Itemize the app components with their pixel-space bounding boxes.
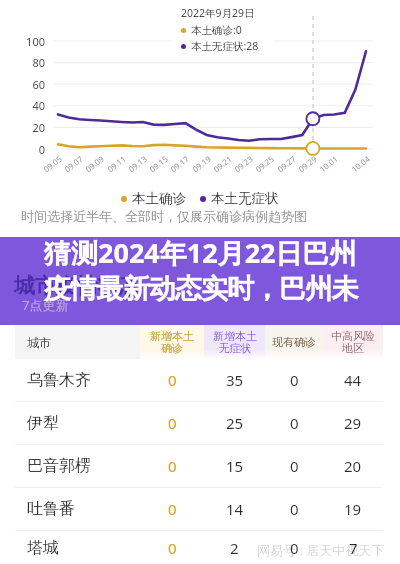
staticText: 44 xyxy=(344,370,362,390)
staticText: 猜测2024年12月22日巴州 xyxy=(44,234,357,271)
staticText: 0 xyxy=(290,456,299,476)
staticText: 0 xyxy=(290,413,299,433)
staticText: 09.27 xyxy=(275,153,298,174)
staticText: 网易号 : 居天中视天下 xyxy=(257,541,385,559)
staticText: 100 xyxy=(15,34,45,49)
staticText: 09.29 xyxy=(296,153,319,174)
staticText: 0 xyxy=(15,142,45,157)
staticText: 40 xyxy=(15,98,45,113)
staticText: 城市疫情状态 xyxy=(14,273,140,299)
staticText: 09.15 xyxy=(147,153,170,174)
staticText: 20 xyxy=(15,120,45,135)
staticText: 09.21 xyxy=(211,153,234,174)
staticText: 09.07 xyxy=(62,153,85,174)
staticText: 2022年9月29日 xyxy=(181,6,255,20)
staticText: 吐鲁番 xyxy=(27,499,75,519)
staticText: 15 xyxy=(226,456,244,476)
staticText: 本土确诊:0 xyxy=(191,23,242,37)
staticText: 80 xyxy=(15,55,45,70)
staticText: 29 xyxy=(344,413,362,433)
staticText: 2 xyxy=(230,538,239,558)
staticText: 0 xyxy=(290,370,299,390)
staticText: 0 xyxy=(168,499,177,519)
staticText: 伊犁 xyxy=(27,413,59,433)
staticText: 0 xyxy=(290,499,299,519)
staticText: 巴音郭楞 xyxy=(27,456,91,476)
staticText: 0 xyxy=(290,538,299,558)
staticText: 20 xyxy=(344,456,362,476)
staticText: 0 xyxy=(168,456,177,476)
staticText: 09.05 xyxy=(41,153,64,174)
staticText: 乌鲁木齐 xyxy=(27,370,91,390)
staticText: 时间选择近半年、全部时，仅展示确诊病例趋势图 xyxy=(0,208,364,224)
staticText: 塔城 xyxy=(27,538,59,558)
staticText: 疫情最新动态实时，巴州未 xyxy=(44,272,358,306)
staticText: 09.13 xyxy=(126,153,149,174)
staticText: 7 xyxy=(349,538,358,558)
staticText: 09.09 xyxy=(83,153,106,174)
staticText: 本土确诊 xyxy=(132,190,186,207)
staticText: 10.01 xyxy=(317,153,340,174)
staticText: 新增本土 确诊 xyxy=(150,329,194,356)
staticText: 09.19 xyxy=(190,153,213,174)
staticText: 60 xyxy=(15,77,45,92)
staticText: 7点更新 xyxy=(22,296,69,314)
staticText: 现有确诊 xyxy=(272,335,316,349)
staticText: 19 xyxy=(344,499,362,519)
staticText: 新增本土 无症状 xyxy=(213,329,257,356)
staticText: 25 xyxy=(226,413,244,433)
staticText: 14 xyxy=(226,499,244,519)
staticText: 09.23 xyxy=(232,153,255,174)
staticText: 0 xyxy=(168,538,177,558)
staticText: 本土无症状:28 xyxy=(191,39,259,53)
staticText: 0 xyxy=(168,413,177,433)
staticText: 本土无症状 xyxy=(211,190,279,207)
staticText: 09.11 xyxy=(105,153,128,174)
staticText: 中高风险 地区 xyxy=(331,329,375,356)
staticText: 10.04 xyxy=(349,153,372,174)
staticText: 09.25 xyxy=(253,153,276,174)
staticText: 35 xyxy=(226,370,244,390)
staticText: 0 xyxy=(168,370,177,390)
staticText: 城市 xyxy=(27,335,51,350)
staticText: 09.17 xyxy=(168,153,191,174)
